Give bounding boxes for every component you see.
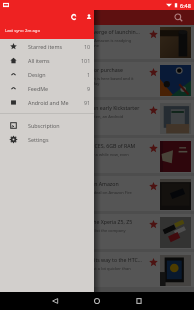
button[interactable]: FeedMe bbox=[0, 81, 94, 95]
staticText: The new HTC One rollout a lot quicker th… bbox=[50, 266, 131, 271]
button[interactable] bbox=[0, 62, 194, 97]
button[interactable]: Star bbox=[149, 144, 158, 153]
button[interactable]: Home bbox=[88, 292, 106, 310]
staticText: 101 bbox=[81, 57, 91, 64]
button[interactable] bbox=[0, 24, 194, 59]
button[interactable] bbox=[0, 214, 194, 249]
button[interactable]: Back bbox=[46, 292, 64, 310]
button[interactable]: Account bbox=[83, 11, 95, 23]
button[interactable] bbox=[0, 252, 194, 287]
button[interactable]: Settings bbox=[0, 132, 94, 146]
staticText: Last sync: 2m ago bbox=[5, 28, 40, 34]
button[interactable]: Subscription bbox=[0, 118, 94, 132]
staticText: Amazon there is a new deal on Amazon Fir… bbox=[50, 190, 132, 195]
staticText: All items bbox=[28, 57, 50, 64]
staticText: a 3D-enabled smartphone bbox=[50, 43, 100, 48]
staticText: Best smartwatch for purchase bbox=[50, 66, 124, 73]
staticText: 1 bbox=[87, 71, 91, 78]
staticText: Smartwatch gets an early Kickstarter bbox=[50, 104, 140, 111]
button[interactable]: Star bbox=[149, 30, 158, 39]
button[interactable] bbox=[0, 176, 194, 211]
staticText: Design bbox=[28, 71, 46, 78]
staticText: Amazon is on the verge of launching a bbox=[50, 28, 143, 35]
button[interactable]: Starred items bbox=[0, 39, 94, 53]
staticText: Sony is at CES Connect, list the company bbox=[50, 228, 126, 233]
staticText: Subscription bbox=[28, 122, 60, 129]
staticText: Kindle Fire deals on Amazon bbox=[50, 180, 119, 187]
button[interactable]: Android and Me bbox=[0, 95, 94, 109]
staticText: It has introduced the listen, an Android bbox=[50, 114, 124, 119]
staticText: Settings bbox=[28, 136, 49, 143]
staticText: 91 bbox=[84, 99, 91, 106]
staticText: looks good during the day bbox=[50, 81, 100, 86]
staticText: 10 bbox=[84, 43, 91, 50]
button[interactable]: Design bbox=[0, 67, 94, 81]
staticText: Sources say that today, Amazon is readyi… bbox=[50, 38, 132, 43]
button[interactable]: Star bbox=[149, 68, 158, 77]
button[interactable]: Star bbox=[149, 106, 158, 115]
button[interactable]: All items bbox=[0, 53, 94, 67]
staticText: 9 bbox=[87, 85, 91, 92]
staticText: Starred items bbox=[28, 43, 63, 50]
staticText: The new Moto 360 Sport is here based and… bbox=[50, 76, 134, 81]
button[interactable] bbox=[0, 100, 194, 135]
button[interactable]: Star bbox=[149, 258, 158, 267]
staticText: LG G5 is shown at CES, 6GB of RAM bbox=[50, 142, 136, 149]
staticText: Sony announces the Xperia Z5, Z5 bbox=[50, 218, 133, 225]
button[interactable]: Recents bbox=[130, 292, 148, 310]
button[interactable]: Star bbox=[149, 182, 158, 191]
staticText: FeedMe bbox=[28, 85, 49, 92]
button[interactable]: Star bbox=[149, 220, 158, 229]
button[interactable]: Search bbox=[173, 12, 184, 23]
button[interactable]: Sync bbox=[68, 11, 80, 23]
staticText: 6:48 bbox=[180, 2, 191, 9]
staticText: LG has been looking for a while now, eve… bbox=[50, 152, 129, 157]
button[interactable] bbox=[0, 138, 194, 173]
staticText: Android M comes its way to the HTC One bbox=[50, 256, 143, 263]
staticText: Android and Me bbox=[28, 99, 69, 106]
